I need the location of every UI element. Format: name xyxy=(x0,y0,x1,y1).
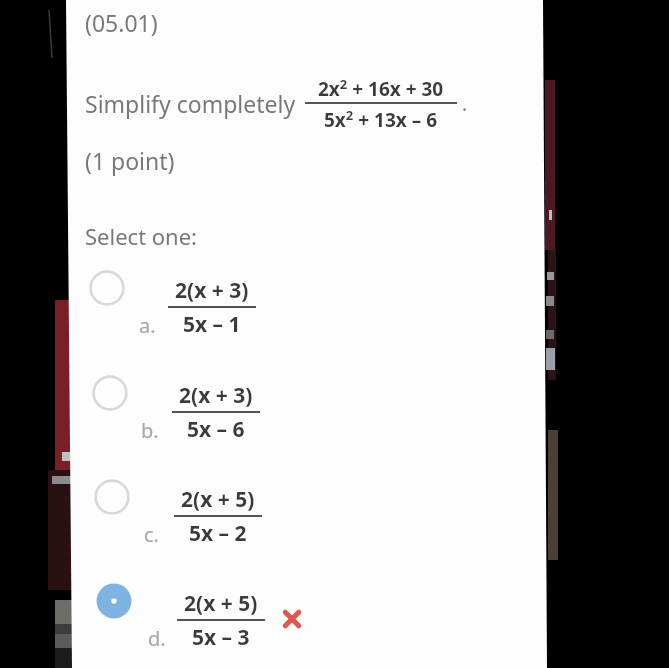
staticText: . xyxy=(462,91,468,117)
staticText: b. xyxy=(141,417,159,444)
staticText: 5x – 1 xyxy=(183,310,241,339)
button[interactable]: Option a. xyxy=(80,264,330,342)
staticText: 5x – 2 xyxy=(189,519,247,548)
staticText: 2(x + 5) xyxy=(184,589,258,618)
staticText: Simplify completely xyxy=(85,88,296,119)
staticText: a. xyxy=(139,312,156,339)
staticText: (05.01) xyxy=(85,7,158,38)
staticText: Select one: xyxy=(85,221,198,251)
staticText: 2(x + 3) xyxy=(179,381,253,410)
staticText: c. xyxy=(144,521,159,548)
staticText: 2x2 + 16x + 30 xyxy=(318,75,444,101)
staticText: 5x – 3 xyxy=(192,623,250,652)
staticText: 5x2 + 13x – 6 xyxy=(324,106,438,132)
staticText: 2(x + 3) xyxy=(175,276,249,305)
staticText: d. xyxy=(148,625,166,652)
button[interactable]: Option b. xyxy=(80,369,330,447)
staticText: 2(x + 5) xyxy=(181,485,255,514)
button[interactable]: Option c. xyxy=(80,473,330,551)
staticText: (1 point) xyxy=(85,145,175,176)
staticText: 5x – 6 xyxy=(187,415,245,444)
button[interactable]: Option d. xyxy=(80,577,330,655)
